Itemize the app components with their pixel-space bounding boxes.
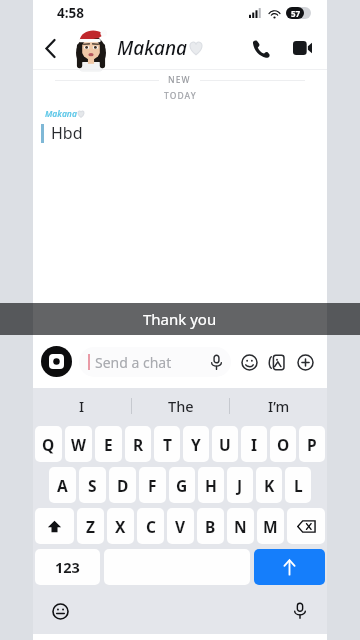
button[interactable]: C: [137, 508, 164, 544]
staticText: P: [307, 434, 317, 455]
staticText: 4:58: [57, 4, 84, 22]
staticText: M: [263, 516, 278, 537]
button[interactable]: The: [132, 388, 229, 423]
staticText: 57: [291, 8, 301, 19]
button[interactable]: T: [154, 426, 180, 462]
button[interactable]: V: [167, 508, 194, 544]
button[interactable]: B: [197, 508, 224, 544]
staticText: The: [168, 396, 194, 416]
staticText: NEW: [168, 74, 191, 86]
button[interactable]: Stickers: [235, 348, 263, 376]
button[interactable]: P: [299, 426, 325, 462]
staticText: N: [234, 516, 247, 537]
staticText: Thank you: [143, 309, 217, 329]
staticText: A: [57, 475, 68, 496]
button[interactable]: Profile: [69, 26, 113, 70]
staticText: E: [104, 434, 113, 455]
button[interactable]: I’m: [230, 388, 327, 423]
staticText: Hbd: [51, 122, 83, 144]
button[interactable]: X: [107, 508, 134, 544]
button[interactable]: 123: [35, 549, 100, 585]
staticText: H: [205, 475, 217, 496]
button[interactable]: J: [227, 467, 253, 503]
staticText: O: [277, 434, 290, 455]
staticText: G: [176, 475, 188, 496]
staticText: I: [79, 396, 85, 416]
staticText: S: [88, 475, 97, 496]
button[interactable]: Send a sticker: [263, 348, 291, 376]
button[interactable]: A: [49, 467, 76, 503]
button[interactable]: L: [285, 467, 311, 503]
button[interactable]: R: [125, 426, 151, 462]
button[interactable]: Thank you: [0, 303, 360, 335]
staticText: R: [133, 434, 144, 455]
button[interactable]: D: [109, 467, 136, 503]
staticText: L: [294, 475, 303, 496]
button[interactable]: More options: [291, 348, 319, 376]
button[interactable]: W: [65, 426, 92, 462]
button[interactable]: Emoji keyboard: [45, 596, 75, 626]
button[interactable]: Send a chat: [79, 347, 231, 377]
button[interactable]: G: [169, 467, 195, 503]
button[interactable]: F: [139, 467, 166, 503]
button[interactable]: M: [257, 508, 284, 544]
staticText: Z: [86, 516, 95, 537]
button[interactable]: Video call: [285, 31, 319, 65]
button[interactable]: Y: [183, 426, 209, 462]
staticText: Q: [42, 434, 55, 455]
button[interactable]: S: [79, 467, 106, 503]
button[interactable]: Backspace: [287, 508, 325, 544]
staticText: X: [115, 516, 126, 537]
staticText: K: [264, 475, 275, 496]
staticText: 123: [55, 557, 80, 577]
staticText: TODAY: [164, 90, 197, 102]
staticText: I: [251, 434, 258, 455]
button[interactable]: U: [212, 426, 238, 462]
button[interactable]: Send: [254, 549, 325, 585]
staticText: Y: [191, 434, 201, 455]
button[interactable]: E: [95, 426, 122, 462]
staticText: Send a chat: [95, 353, 172, 372]
button[interactable]: I: [33, 388, 131, 423]
staticText: W: [71, 434, 86, 455]
button[interactable]: Shift: [35, 508, 74, 544]
button[interactable]: Open camera: [41, 346, 72, 377]
button[interactable]: Voice input: [285, 596, 315, 626]
staticText: D: [117, 475, 129, 496]
button[interactable]: O: [270, 426, 296, 462]
button[interactable]: I: [241, 426, 267, 462]
staticText: U: [219, 434, 231, 455]
staticText: C: [146, 516, 156, 537]
button[interactable]: Q: [35, 426, 62, 462]
staticText: Makana: [45, 108, 77, 120]
staticText: J: [237, 475, 243, 496]
button[interactable]: K: [256, 467, 282, 503]
button[interactable]: Voice message: [203, 349, 229, 375]
button[interactable]: Makana: [41, 108, 327, 144]
staticText: Makana: [117, 35, 187, 61]
staticText: I’m: [268, 396, 290, 416]
button[interactable]: Voice call: [243, 31, 277, 65]
staticText: B: [205, 516, 216, 537]
button[interactable]: Back: [33, 31, 67, 65]
staticText: V: [175, 516, 186, 537]
button[interactable]: Z: [77, 508, 104, 544]
staticText: T: [163, 434, 172, 455]
button[interactable]: Makana: [117, 35, 204, 61]
button[interactable]: N: [227, 508, 254, 544]
button[interactable]: H: [198, 467, 224, 503]
staticText: F: [148, 475, 157, 496]
